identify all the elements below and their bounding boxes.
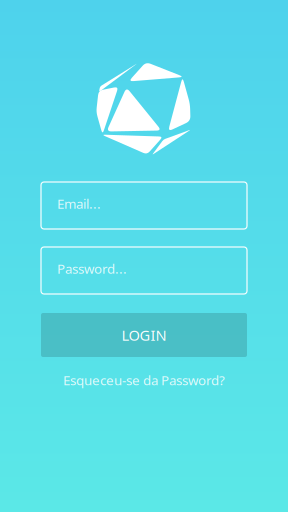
button[interactable]: LOGIN [41, 313, 247, 357]
button[interactable]: Esqueceu-se da Password? [41, 369, 247, 391]
button[interactable]: Password... [41, 247, 247, 294]
staticText: Email... [57, 195, 101, 212]
staticText: LOGIN [121, 325, 166, 345]
button[interactable]: Email... [41, 182, 247, 229]
staticText: Password... [57, 260, 127, 277]
staticText: Esqueceu-se da Password? [63, 371, 225, 389]
